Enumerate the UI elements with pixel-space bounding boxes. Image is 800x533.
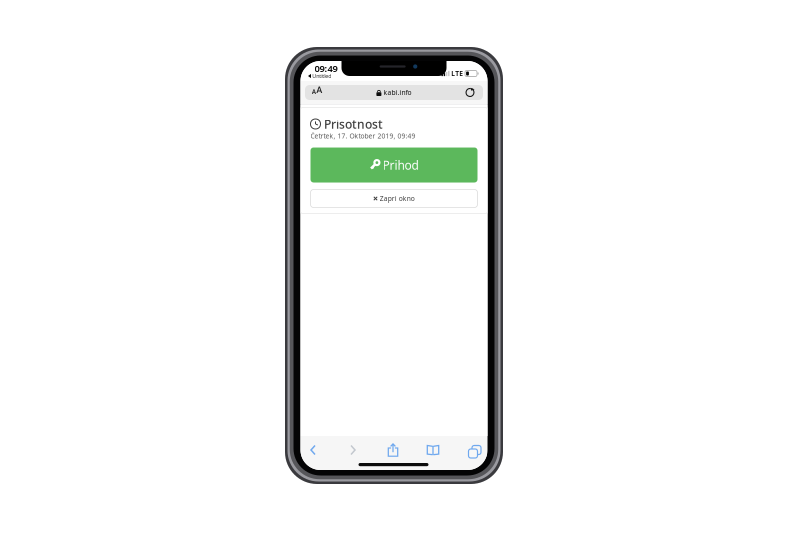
staticText: A <box>312 87 316 96</box>
button[interactable]: Share <box>377 439 409 461</box>
button[interactable]: Prihod <box>310 147 477 182</box>
button[interactable]: Reload <box>459 85 481 100</box>
button[interactable]: Back <box>297 439 329 461</box>
staticText: Četrtek, 17. Oktober 2019, 09:49 <box>310 132 415 140</box>
button[interactable]: Text size <box>306 85 328 100</box>
staticText: Prihod <box>382 157 418 173</box>
staticText: 09:49 <box>314 62 337 75</box>
staticText: A <box>316 84 322 96</box>
staticText: Zapri okno <box>380 194 415 203</box>
button[interactable]: Forward <box>337 439 369 461</box>
staticText: LTE <box>451 69 463 78</box>
button[interactable]: Tabs <box>457 439 489 461</box>
staticText: kabi.info <box>384 88 412 97</box>
staticText: Untitled <box>312 72 331 80</box>
staticText: Prisotnost <box>324 116 383 132</box>
button[interactable]: Address <box>364 85 424 100</box>
button[interactable]: Bookmarks <box>417 439 449 461</box>
button[interactable]: Zapri okno <box>310 189 477 207</box>
